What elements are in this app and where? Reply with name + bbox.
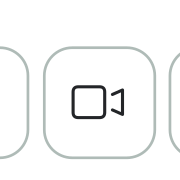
button[interactable]: Next action: [170, 48, 180, 158]
button[interactable]: Video call: [44, 48, 155, 158]
button[interactable]: Previous action: [0, 48, 28, 158]
